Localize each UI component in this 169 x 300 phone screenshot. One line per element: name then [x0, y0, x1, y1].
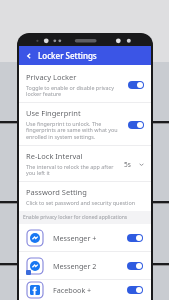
staticText: Password Setting [26, 187, 87, 197]
staticText: Re-Lock Interval [26, 151, 83, 161]
staticText: Facebook + [53, 285, 127, 295]
staticText: 5s [124, 160, 131, 169]
staticText: The interval to relock the app after you… [26, 163, 119, 177]
button[interactable]: Privacy Locker [19, 67, 151, 102]
button[interactable]: Facebook + [19, 280, 151, 300]
staticText: Locker Settings [38, 50, 97, 61]
button[interactable]: Use Fingerprint [19, 103, 151, 145]
button[interactable]: Toggle [127, 286, 143, 294]
staticText: Click to set password and security quest… [26, 199, 135, 206]
button[interactable]: Back [23, 50, 35, 62]
staticText: Messenger + [53, 233, 127, 243]
staticText: Toggle to enable or disable privacy lock… [26, 84, 123, 98]
button[interactable]: Toggle [127, 262, 143, 270]
staticText: Messenger 2 [53, 261, 127, 271]
staticText: Privacy Locker [26, 72, 77, 82]
button[interactable]: Toggle [128, 81, 144, 89]
staticText: Enable privacy locker for cloned applica… [23, 214, 128, 221]
button[interactable]: Re-Lock Interval [19, 146, 151, 181]
staticText: Use fingerprint to unlock. The fingerpri… [26, 120, 123, 141]
button[interactable]: Toggle [127, 234, 143, 242]
button[interactable]: Password Setting [19, 182, 151, 211]
button[interactable]: Toggle [128, 121, 144, 129]
staticText: Use Fingerprint [26, 108, 81, 118]
button[interactable]: Messenger 2 [19, 252, 151, 279]
button[interactable]: Messenger + [19, 224, 151, 251]
